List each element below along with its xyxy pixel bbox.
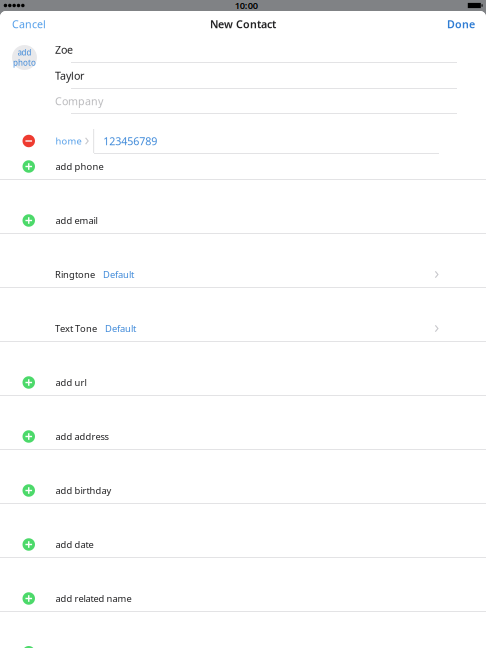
staticText: Done: [447, 17, 475, 31]
staticText: Zoe: [55, 42, 73, 57]
button[interactable]: Cancel: [0, 11, 54, 37]
button[interactable]: home: [0, 129, 486, 153]
button[interactable]: add email: [0, 208, 486, 233]
staticText: Text Tone: [55, 322, 97, 335]
staticText: Cancel: [12, 17, 46, 31]
staticText: photo: [13, 57, 36, 68]
staticText: 10:00: [235, 0, 258, 12]
button[interactable]: add birthday: [0, 478, 486, 503]
staticText: add: [17, 47, 31, 58]
button[interactable]: add date: [0, 532, 486, 557]
staticText: New Contact: [210, 17, 276, 31]
button[interactable]: Ringtone: [0, 262, 486, 287]
button[interactable]: add phone: [0, 154, 486, 179]
button[interactable]: add url: [0, 370, 486, 395]
staticText: add address: [55, 430, 108, 443]
button[interactable]: Done: [439, 11, 486, 37]
staticText: 123456789: [103, 134, 157, 148]
staticText: add email: [55, 214, 97, 227]
staticText: Default: [105, 322, 136, 335]
button[interactable]: Text Tone: [0, 316, 486, 341]
staticText: Company: [55, 94, 103, 108]
button[interactable]: add related name: [0, 586, 486, 611]
staticText: add related name: [55, 592, 131, 605]
button[interactable]: add address: [0, 424, 486, 449]
button[interactable]: Add photo: [12, 45, 37, 70]
staticText: Ringtone: [55, 268, 95, 281]
staticText: add date: [55, 538, 93, 551]
staticText: home: [55, 135, 81, 147]
staticText: add url: [55, 376, 86, 389]
staticText: add birthday: [55, 484, 111, 497]
staticText: Taylor: [55, 68, 84, 83]
staticText: Default: [103, 268, 134, 281]
staticText: add phone: [55, 160, 103, 173]
